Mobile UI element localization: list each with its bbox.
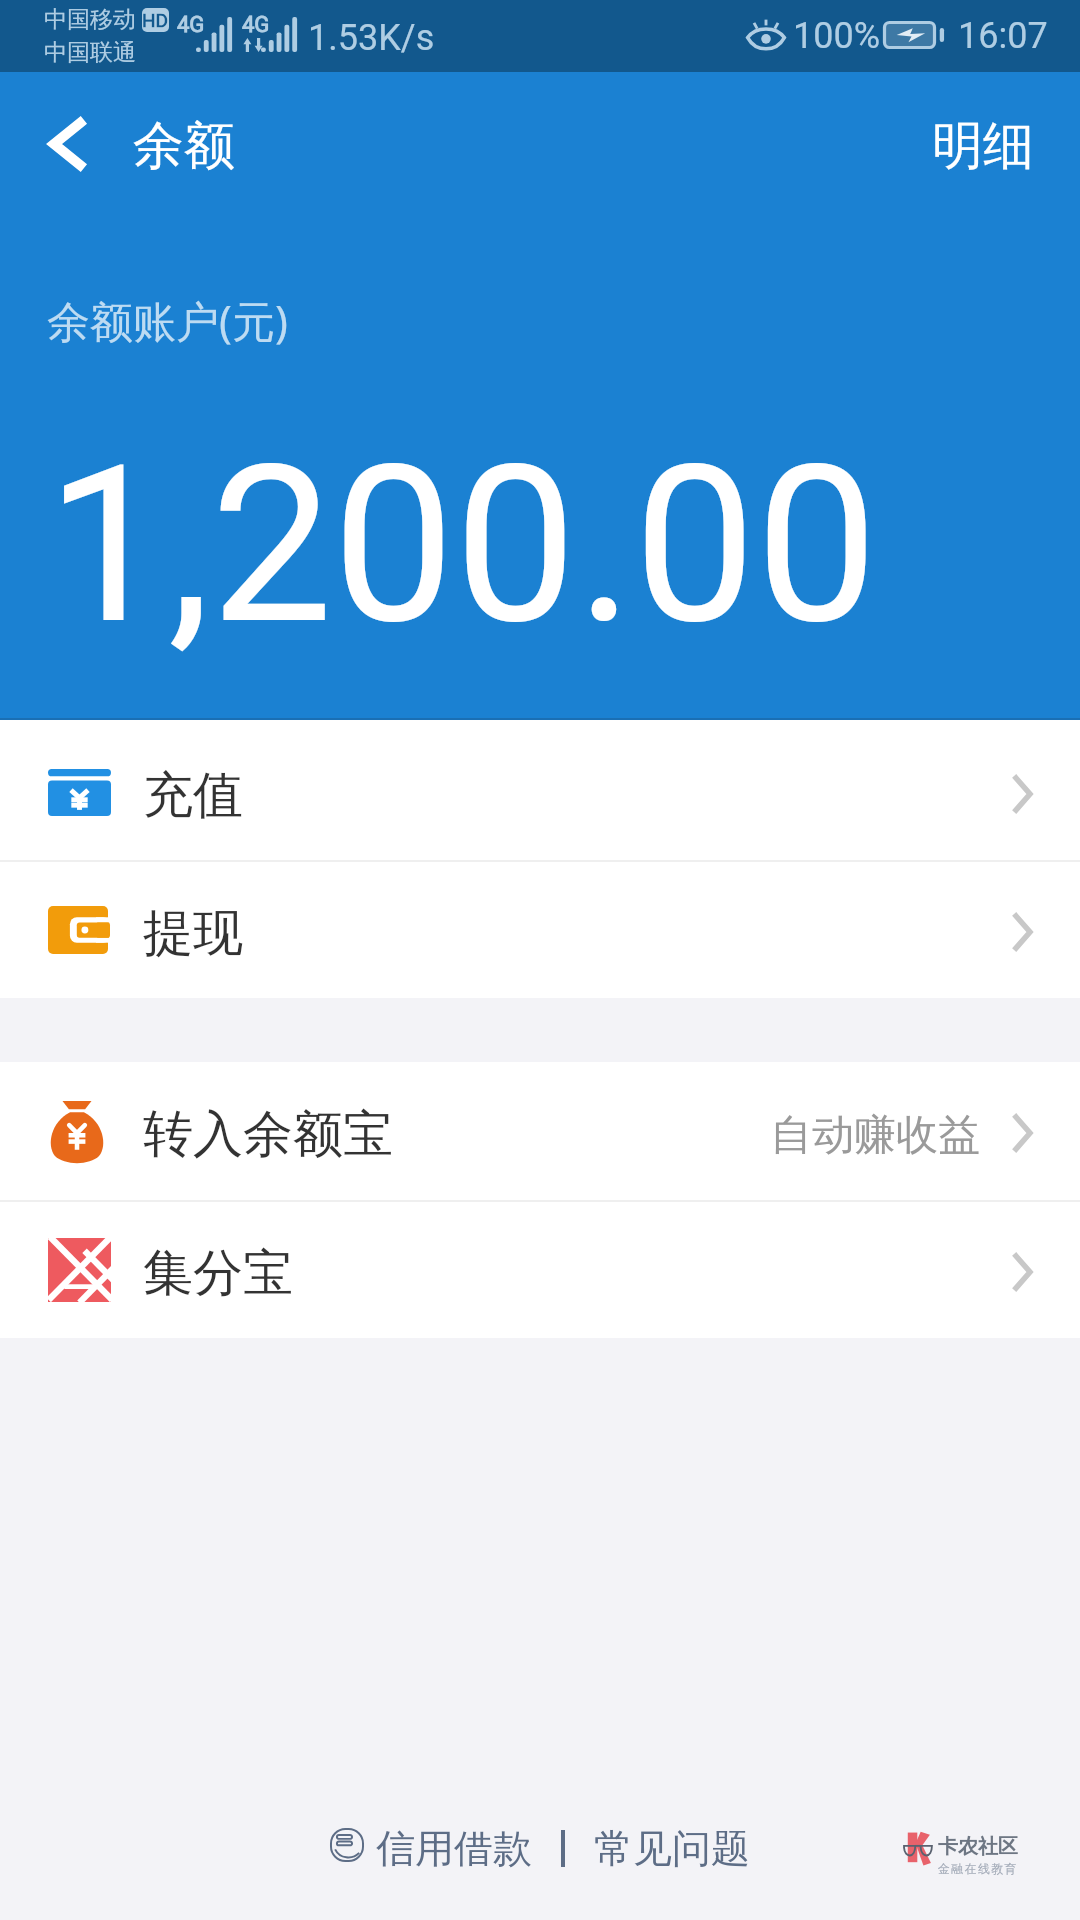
button[interactable]: 提现 (0, 862, 1080, 998)
staticText: 转入余额宝 (143, 1103, 393, 1166)
button[interactable]: 充值 (0, 720, 1080, 860)
button[interactable]: 明细 (886, 90, 1080, 202)
staticText: 金融在线教育 (938, 1861, 1018, 1876)
staticText: HD (142, 9, 169, 31)
button[interactable]: 常见问题 (588, 1808, 756, 1889)
staticText: 中国移动 (44, 5, 136, 34)
button[interactable]: 返回 (4, 88, 126, 200)
staticText: 余额账户(元) (47, 291, 288, 350)
staticText: 4G (242, 12, 270, 38)
staticText: 100% (793, 15, 881, 57)
staticText: 集分宝 (143, 1242, 293, 1305)
staticText: 常见问题 (594, 1824, 750, 1873)
staticText: 信用借款 (376, 1824, 532, 1873)
staticText: 卡农社区 (938, 1834, 1018, 1859)
button[interactable]: 信用借款 (326, 1808, 538, 1889)
staticText: 中国联通 (44, 38, 136, 67)
staticText: 余额 (133, 114, 235, 178)
staticText: 自动赚收益 (770, 1109, 980, 1162)
staticText: 提现 (143, 902, 243, 965)
staticText: 16:07 (958, 15, 1048, 57)
staticText: 1.53K/s (308, 17, 435, 59)
staticText: 4G (177, 12, 205, 38)
button[interactable]: 转入余额宝 (0, 1062, 1080, 1200)
staticText: 明细 (932, 114, 1034, 178)
button[interactable]: 集分宝 (0, 1202, 1080, 1338)
staticText: 充值 (143, 764, 243, 827)
staticText: 1,200.00 (46, 419, 878, 673)
